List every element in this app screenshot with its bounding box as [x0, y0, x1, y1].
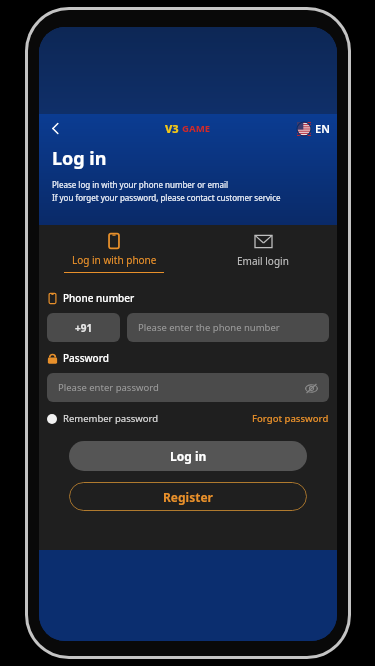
staticText: If you forget your password, please cont…	[52, 192, 281, 203]
staticText: Log in	[170, 448, 207, 464]
staticText: Please enter the phone number	[138, 321, 280, 334]
staticText: +91	[75, 321, 93, 335]
staticText: EN	[315, 121, 330, 136]
staticText: Email login	[237, 254, 289, 268]
staticText: Remember password	[63, 412, 159, 425]
staticText: GAME	[182, 122, 211, 135]
button[interactable]: Forgot password	[252, 412, 329, 425]
button[interactable]: Email login	[188, 231, 337, 279]
button[interactable]: EN	[297, 121, 330, 136]
staticText: Phone number	[63, 291, 135, 305]
button[interactable]: +91	[47, 313, 120, 342]
staticText: Password	[63, 351, 109, 365]
staticText: V3	[165, 121, 179, 136]
button[interactable]: Show password	[302, 379, 320, 397]
button[interactable]: Log in with phone	[39, 231, 188, 279]
button[interactable]: Log in	[69, 441, 307, 471]
staticText: Log in	[52, 146, 107, 171]
button[interactable]: Please enter the phone number	[127, 313, 329, 342]
button[interactable]: Back	[41, 114, 69, 142]
staticText: Please enter password	[58, 381, 159, 394]
button[interactable]: Register	[69, 482, 307, 511]
staticText: Register	[163, 489, 213, 505]
button[interactable]: Please enter password	[47, 373, 329, 402]
staticText: Log in with phone	[72, 253, 157, 267]
staticText: Please log in with your phone number or …	[52, 179, 229, 190]
button[interactable]: Remember password	[47, 412, 159, 425]
staticText: Forgot password	[252, 412, 329, 425]
